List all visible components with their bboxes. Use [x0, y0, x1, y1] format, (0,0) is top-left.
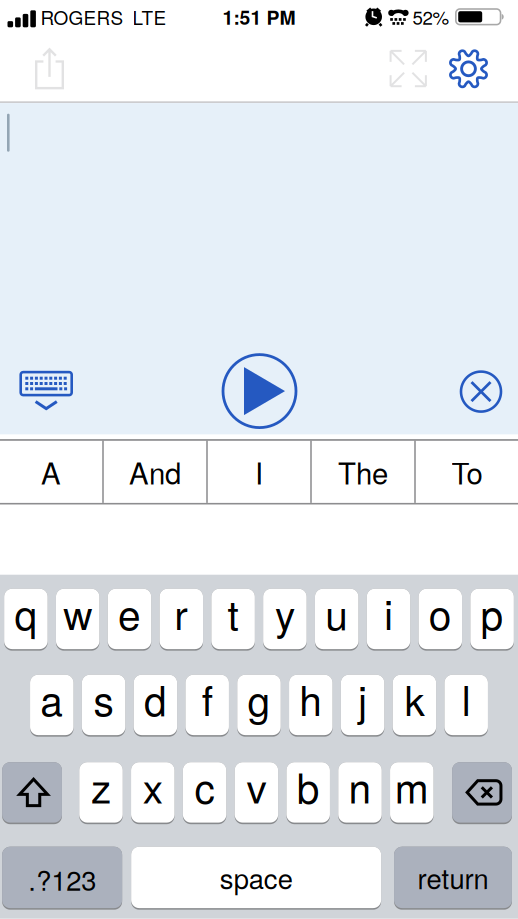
button[interactable]: c [183, 762, 226, 824]
staticText: g [247, 669, 270, 727]
staticText: return [417, 858, 488, 897]
staticText: z [91, 757, 111, 815]
staticText: A [41, 451, 61, 493]
staticText: k [404, 669, 424, 727]
button[interactable] [20, 372, 72, 410]
staticText: x [143, 757, 163, 815]
button[interactable]: v [235, 762, 278, 824]
button[interactable] [390, 50, 449, 87]
button[interactable]: a [30, 675, 74, 737]
staticText: t [228, 583, 239, 641]
button[interactable] [2, 762, 62, 824]
staticText: c [195, 757, 215, 815]
staticText: o [429, 583, 452, 641]
staticText: The [338, 451, 388, 493]
button[interactable]: h [289, 675, 333, 737]
staticText: q [14, 583, 37, 641]
button[interactable]: e [108, 589, 151, 651]
button[interactable]: And [104, 441, 206, 503]
staticText: u [325, 583, 348, 641]
staticText: v [246, 757, 266, 815]
button[interactable]: space [131, 847, 381, 910]
button[interactable]: To [416, 441, 518, 503]
button[interactable]: i [367, 589, 410, 651]
staticText: I [255, 451, 263, 493]
staticText: s [94, 669, 114, 727]
button[interactable]: y [263, 589, 307, 651]
button[interactable]: f [185, 675, 229, 737]
button[interactable] [223, 355, 296, 428]
button[interactable]: o [419, 589, 462, 651]
button[interactable]: A [0, 441, 102, 503]
staticText: ROGERS [40, 3, 123, 30]
button[interactable]: x [131, 762, 175, 824]
button[interactable]: b [286, 762, 330, 824]
button[interactable] [452, 762, 512, 824]
staticText: j [358, 669, 367, 727]
button[interactable]: k [393, 675, 436, 737]
staticText: .?123 [28, 859, 96, 898]
button[interactable] [461, 372, 501, 412]
button[interactable]: n [338, 762, 382, 824]
button[interactable]: q [4, 589, 48, 651]
button[interactable]: The [312, 441, 414, 503]
staticText: i [384, 583, 393, 641]
staticText: m [395, 757, 429, 815]
button[interactable] [449, 49, 518, 88]
staticText: r [174, 583, 188, 641]
button[interactable]: .?123 [2, 847, 122, 910]
button[interactable]: I [208, 441, 310, 503]
button[interactable]: d [134, 675, 177, 737]
button[interactable]: m [390, 762, 434, 824]
staticText: n [348, 757, 371, 815]
staticText: To [451, 451, 482, 493]
button[interactable]: l [444, 675, 488, 737]
staticText: space [220, 858, 293, 897]
staticText: b [297, 757, 320, 815]
staticText: h [299, 669, 322, 727]
staticText: w [63, 583, 92, 641]
button[interactable]: j [341, 675, 384, 737]
button[interactable]: t [211, 589, 255, 651]
staticText: d [144, 669, 167, 727]
button[interactable]: z [79, 762, 123, 824]
staticText: 1:51 PM [222, 3, 295, 31]
button[interactable]: w [56, 589, 99, 651]
button[interactable]: r [159, 589, 203, 651]
button[interactable]: s [82, 675, 125, 737]
staticText: e [118, 583, 141, 641]
button[interactable]: p [470, 589, 514, 651]
button[interactable] [0, 48, 74, 89]
staticText: LTE [132, 3, 166, 30]
staticText: And [129, 451, 181, 493]
staticText: f [202, 669, 213, 727]
staticText: l [462, 669, 471, 727]
button[interactable]: g [237, 675, 281, 737]
staticText: y [275, 583, 295, 641]
staticText: 52% [413, 3, 450, 30]
staticText: p [481, 583, 504, 641]
staticText: a [40, 669, 63, 727]
button[interactable]: return [394, 847, 512, 910]
button[interactable]: u [315, 589, 358, 651]
